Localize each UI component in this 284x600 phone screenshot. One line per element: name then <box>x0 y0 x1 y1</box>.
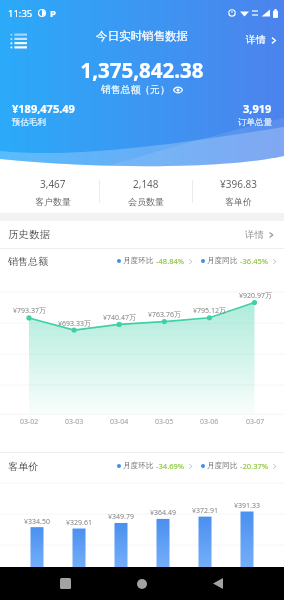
staticText: -34.69% <box>156 461 185 471</box>
staticText: 2,148 <box>133 177 159 191</box>
staticText: P <box>50 7 56 20</box>
staticText: ¥763.76万 <box>148 310 181 320</box>
staticText: 月度环比 <box>123 461 154 471</box>
button[interactable]: 2,148 <box>100 168 192 220</box>
button[interactable]: 月度同比 <box>201 253 278 269</box>
staticText: ¥396.83 <box>220 177 257 191</box>
staticText: 3,919 <box>243 101 272 116</box>
staticText: ¥372.91 <box>192 506 218 516</box>
staticText: 3,467 <box>40 177 66 191</box>
staticText: -36.45% <box>240 256 269 266</box>
staticText: ¥349.79 <box>108 512 134 522</box>
button[interactable]: Back <box>194 567 242 600</box>
button[interactable]: ¥396.83 <box>193 168 284 220</box>
staticText: 详情 <box>245 229 264 241</box>
staticText: -20.37% <box>240 461 269 471</box>
staticText: ¥364.49 <box>150 508 176 518</box>
staticText: ¥693.33万 <box>58 319 91 329</box>
button[interactable]: Menu <box>2 26 34 54</box>
staticText: 03-02 <box>20 417 39 427</box>
button[interactable]: 月度环比 <box>117 253 194 269</box>
button[interactable]: 月度环比 <box>117 458 194 474</box>
staticText: 会员数量 <box>128 196 164 207</box>
staticText: 11:35 <box>8 7 33 20</box>
staticText: 客单价 <box>8 460 38 473</box>
staticText: 03-03 <box>65 417 84 427</box>
staticText: ¥740.47万 <box>103 313 136 323</box>
staticText: 月度环比 <box>123 256 154 266</box>
staticText: 1,375,842.38 <box>0 56 284 84</box>
button[interactable]: 详情 <box>242 30 284 50</box>
staticText: 预估毛利 <box>12 117 46 128</box>
staticText: ¥329.61 <box>66 518 92 528</box>
button[interactable]: Recents <box>41 567 89 600</box>
staticText: 03-07 <box>246 417 265 427</box>
staticText: ¥920.97万 <box>239 291 272 301</box>
staticText: 03-04 <box>110 417 129 427</box>
staticText: 历史数据 <box>8 228 50 241</box>
staticText: ¥793.37万 <box>13 306 46 316</box>
staticText: 月度同比 <box>207 256 238 266</box>
staticText: ¥391.33 <box>234 501 260 511</box>
staticText: 客户数量 <box>35 196 71 207</box>
staticText: -48.84% <box>156 256 185 266</box>
staticText: 客单价 <box>225 196 252 207</box>
staticText: 订单总量 <box>238 117 272 128</box>
staticText: ¥189,475.49 <box>12 101 75 116</box>
button[interactable]: 3,467 <box>7 168 99 220</box>
staticText: 销售总额 <box>8 255 48 268</box>
staticText: 今日实时销售数据 <box>96 29 188 43</box>
button[interactable]: 详情 <box>242 226 278 244</box>
staticText: 销售总额（元） <box>101 84 170 96</box>
staticText: 03-05 <box>155 417 174 427</box>
staticText: ¥334.50 <box>24 517 50 527</box>
staticText: 详情 <box>246 34 266 46</box>
button[interactable]: Home <box>118 567 166 600</box>
staticText: 月度同比 <box>207 461 238 471</box>
staticText: 03-06 <box>200 417 219 427</box>
staticText: ¥795.12万 <box>193 306 226 316</box>
button[interactable]: 月度同比 <box>201 458 278 474</box>
